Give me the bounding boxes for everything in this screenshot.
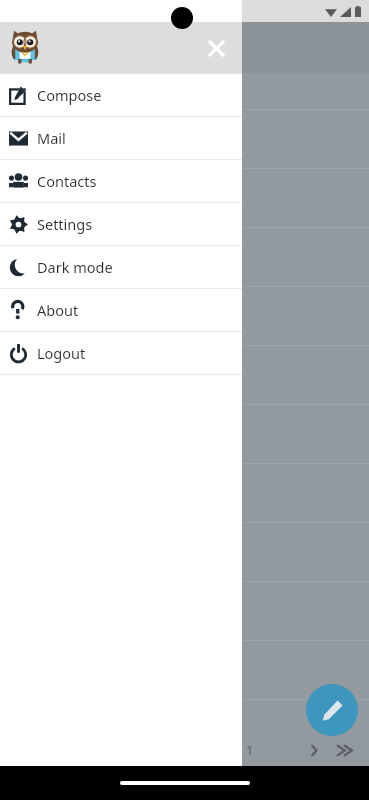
- button[interactable]: Compose new message: [306, 684, 358, 736]
- staticText: Settings: [37, 214, 93, 234]
- button[interactable]: Close drawer: [198, 30, 234, 66]
- staticText: Logout: [37, 343, 86, 363]
- staticText: Contacts: [37, 171, 97, 191]
- button[interactable]: Compose: [0, 74, 242, 116]
- button[interactable]: Logout: [0, 332, 242, 374]
- staticText: About: [37, 300, 79, 320]
- staticText: Compose: [37, 85, 102, 105]
- staticText: Dark mode: [37, 257, 113, 277]
- staticText: Mail: [37, 128, 66, 148]
- button[interactable]: Settings: [0, 203, 242, 245]
- staticText: 1: [246, 741, 254, 759]
- button[interactable]: 2023-04-20 15:13: [242, 641, 369, 700]
- button[interactable]: Contacts: [0, 160, 242, 202]
- button[interactable]: Dark mode: [0, 246, 242, 288]
- button[interactable]: Last page: [329, 735, 359, 765]
- button[interactable]: Next page: [299, 735, 329, 765]
- button[interactable]: App logo: [6, 29, 44, 67]
- button[interactable]: Mail: [0, 117, 242, 159]
- button[interactable]: About: [0, 289, 242, 331]
